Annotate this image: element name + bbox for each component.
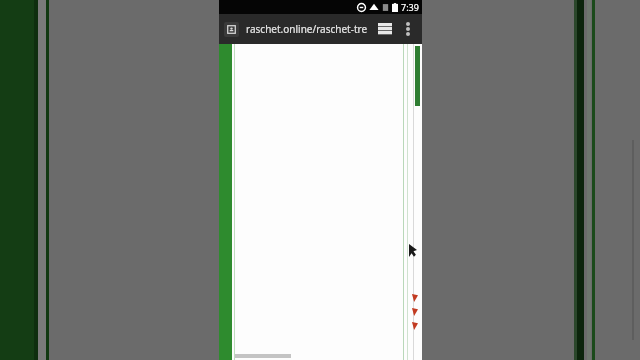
button[interactable]: More options: [397, 18, 419, 40]
staticText: raschet.online/raschet-tre: [246, 22, 368, 36]
button[interactable]: Tabs: [373, 17, 397, 41]
button[interactable]: Page info: [224, 22, 239, 37]
staticText: 7:39: [401, 1, 419, 13]
